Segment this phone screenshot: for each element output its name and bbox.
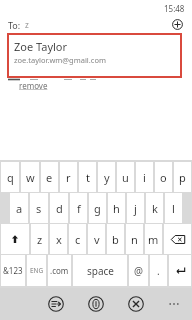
staticText: m	[148, 232, 159, 247]
button[interactable]: Enter	[169, 255, 191, 286]
button[interactable]: i	[136, 162, 153, 192]
staticText: z	[25, 19, 29, 30]
staticText: h	[113, 201, 120, 216]
staticText: ENG	[30, 266, 44, 275]
button[interactable]: Zoe Taylor	[7, 33, 182, 78]
staticText: l	[172, 201, 175, 216]
staticText: x	[56, 232, 62, 247]
staticText: .	[157, 264, 160, 278]
staticText: a	[16, 201, 23, 216]
staticText: remove	[19, 80, 48, 91]
button[interactable]: @	[129, 255, 148, 286]
staticText: p	[179, 170, 186, 185]
button[interactable]: h	[108, 193, 125, 223]
staticText: d	[56, 201, 63, 216]
button[interactable]: Backspace	[164, 224, 191, 254]
staticText: 15:48	[164, 3, 185, 14]
button[interactable]: o	[155, 162, 172, 192]
button[interactable]: q	[1, 162, 19, 192]
button[interactable]: .com	[48, 255, 71, 286]
button[interactable]: Close	[123, 291, 149, 317]
button[interactable]: g	[89, 193, 106, 223]
staticText: .com	[50, 265, 69, 276]
button[interactable]: Attach	[83, 291, 109, 317]
button[interactable]: s	[30, 193, 48, 223]
button[interactable]: Shift	[1, 224, 29, 254]
staticText: i	[143, 170, 146, 185]
button[interactable]: z	[31, 224, 48, 254]
button[interactable]: v	[88, 224, 105, 254]
staticText: g	[94, 201, 101, 216]
button[interactable]: w	[21, 162, 39, 192]
staticText: r	[66, 170, 71, 185]
staticText: space	[87, 264, 114, 278]
button[interactable]: ENG	[27, 255, 46, 286]
button[interactable]: j	[127, 193, 144, 223]
button[interactable]: f	[70, 193, 87, 223]
staticText: z	[37, 232, 43, 247]
button[interactable]: e	[41, 162, 58, 192]
staticText: @	[134, 264, 143, 278]
staticText: c	[75, 232, 81, 247]
button[interactable]: c	[69, 224, 86, 254]
button[interactable]: Add recipient	[168, 16, 186, 33]
button[interactable]: d	[50, 193, 68, 223]
button[interactable]: p	[174, 162, 191, 192]
staticText: y	[104, 170, 110, 185]
staticText: q	[7, 170, 14, 185]
staticText: f	[77, 201, 81, 216]
staticText: &123	[3, 265, 23, 276]
button[interactable]: l	[165, 193, 182, 223]
staticText: s	[36, 201, 42, 216]
button[interactable]: y	[98, 162, 115, 192]
button[interactable]: x	[50, 224, 67, 254]
button[interactable]: u	[117, 162, 134, 192]
staticText: w	[26, 170, 35, 185]
button[interactable]: r	[60, 162, 77, 192]
button[interactable]: Send	[43, 291, 69, 317]
staticText: j	[134, 201, 137, 216]
button[interactable]: k	[146, 193, 163, 223]
staticText: n	[131, 232, 138, 247]
button[interactable]: &123	[1, 255, 25, 286]
staticText: e	[46, 170, 53, 185]
button[interactable]: space	[73, 255, 127, 286]
staticText: b	[112, 232, 119, 247]
staticText: To:	[8, 19, 21, 31]
staticText: t	[86, 170, 90, 185]
staticText: k	[152, 201, 158, 216]
button[interactable]: a	[10, 193, 28, 223]
button[interactable]: More options	[164, 294, 184, 314]
staticText: Zoe Taylor	[14, 39, 68, 54]
staticText: o	[160, 170, 167, 185]
button[interactable]: b	[107, 224, 124, 254]
staticText: v	[94, 232, 100, 247]
staticText: zoe.taylor.wm@gmail.com	[14, 55, 106, 65]
button[interactable]: remove	[19, 80, 48, 91]
staticText: u	[122, 170, 129, 185]
button[interactable]: t	[79, 162, 96, 192]
button[interactable]: .	[150, 255, 167, 286]
button[interactable]: n	[126, 224, 143, 254]
button[interactable]: m	[145, 224, 162, 254]
